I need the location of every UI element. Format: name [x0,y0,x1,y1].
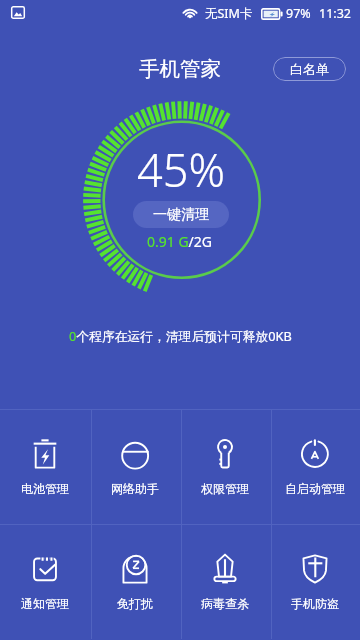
staticText: 0.91 G/2G [147,232,213,251]
staticText: 免打扰 [117,596,153,611]
staticText: 病毒查杀 [201,596,249,611]
other: Gallery [11,6,25,19]
button[interactable]: 电池管理 [0,410,90,524]
button[interactable]: 免打扰 [90,525,180,639]
staticText: 手机防盗 [291,596,339,611]
button[interactable]: 网络助手 [90,410,180,524]
staticText: 通知管理 [21,596,69,611]
staticText: 97% [286,5,311,22]
staticText: 电池管理 [21,481,69,496]
button[interactable]: 手机防盗 [270,525,360,639]
staticText: 自启动管理 [285,481,345,496]
staticText: 网络助手 [111,481,159,496]
button[interactable]: 权限管理 [180,410,270,524]
button[interactable]: 通知管理 [0,525,90,639]
staticText: 手机管家 [139,56,221,82]
staticText: 权限管理 [201,481,249,496]
staticText: 45% [137,139,225,200]
staticText: 无SIM卡 [205,5,253,22]
button[interactable]: 自启动管理 [270,410,360,524]
staticText: 一键清理 [153,206,209,224]
button[interactable]: 白名单 [273,57,346,81]
staticText: 白名单 [290,61,329,77]
button[interactable]: 一键清理 [133,201,229,228]
staticText: 0个程序在运行，清理后预计可释放0KB [69,327,292,344]
button[interactable]: 病毒查杀 [180,525,270,639]
staticText: 11:32 [319,5,351,22]
